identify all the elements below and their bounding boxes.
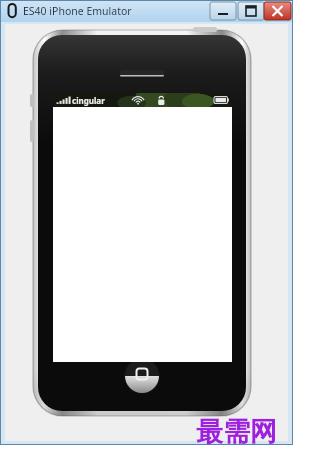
staticText: 最需网	[196, 415, 277, 449]
button[interactable]: Minimize	[210, 2, 236, 20]
button[interactable]: Close	[264, 2, 291, 20]
button[interactable]: Maximize	[238, 2, 264, 20]
other: Application icon	[6, 4, 20, 19]
staticText: cingular	[72, 95, 105, 106]
button[interactable]: iPhone device	[31, 28, 253, 418]
staticText: ES40 iPhone Emulator	[23, 4, 132, 18]
